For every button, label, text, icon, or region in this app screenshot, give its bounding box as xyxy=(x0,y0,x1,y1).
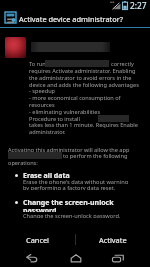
button[interactable]: Change the screen-unlock password xyxy=(0,198,150,218)
staticText: requires Activate administrator. Enablin… xyxy=(29,67,136,75)
staticText: To run xyxy=(29,60,46,68)
button[interactable]: Back xyxy=(14,249,50,267)
button[interactable]: Cancel xyxy=(0,231,75,248)
staticText: by performing a factory data reset. xyxy=(23,184,116,190)
staticText: Cancel xyxy=(26,235,50,245)
staticText: - speedup xyxy=(29,87,56,95)
staticText: the administrator to avoid errors in the xyxy=(29,74,132,82)
staticText: takes less than 1 minute. Requires Enabl… xyxy=(29,121,138,129)
staticText: Activating this administrator will allow… xyxy=(8,146,130,154)
staticText: Procedure to install xyxy=(29,115,80,123)
staticText: Erase all data xyxy=(23,171,70,178)
staticText: administrator. xyxy=(29,128,66,136)
staticText: Erase the phone's data without warning xyxy=(23,178,129,184)
staticText: Change the screen-unlock password xyxy=(23,198,114,212)
staticText: - more economical consumption of xyxy=(29,94,121,102)
staticText: resources xyxy=(29,101,55,109)
staticText: Change the screen-unlock password. xyxy=(23,212,121,218)
staticText: operations: xyxy=(8,159,38,167)
button[interactable]: Erase all data xyxy=(0,171,150,190)
staticText: device and adds the following advantages xyxy=(29,81,139,89)
staticText: 2:27 xyxy=(130,0,147,11)
button[interactable]: Recent apps xyxy=(100,249,136,267)
staticText: correctly xyxy=(111,60,134,68)
staticText: to perform the following xyxy=(63,152,128,160)
button[interactable]: Activate xyxy=(75,231,150,248)
staticText: - eliminating vulnerabilities xyxy=(29,108,101,116)
staticText: Activate device administrator? xyxy=(19,14,124,24)
button[interactable]: Home xyxy=(58,249,94,267)
staticText: Activate xyxy=(99,235,127,245)
